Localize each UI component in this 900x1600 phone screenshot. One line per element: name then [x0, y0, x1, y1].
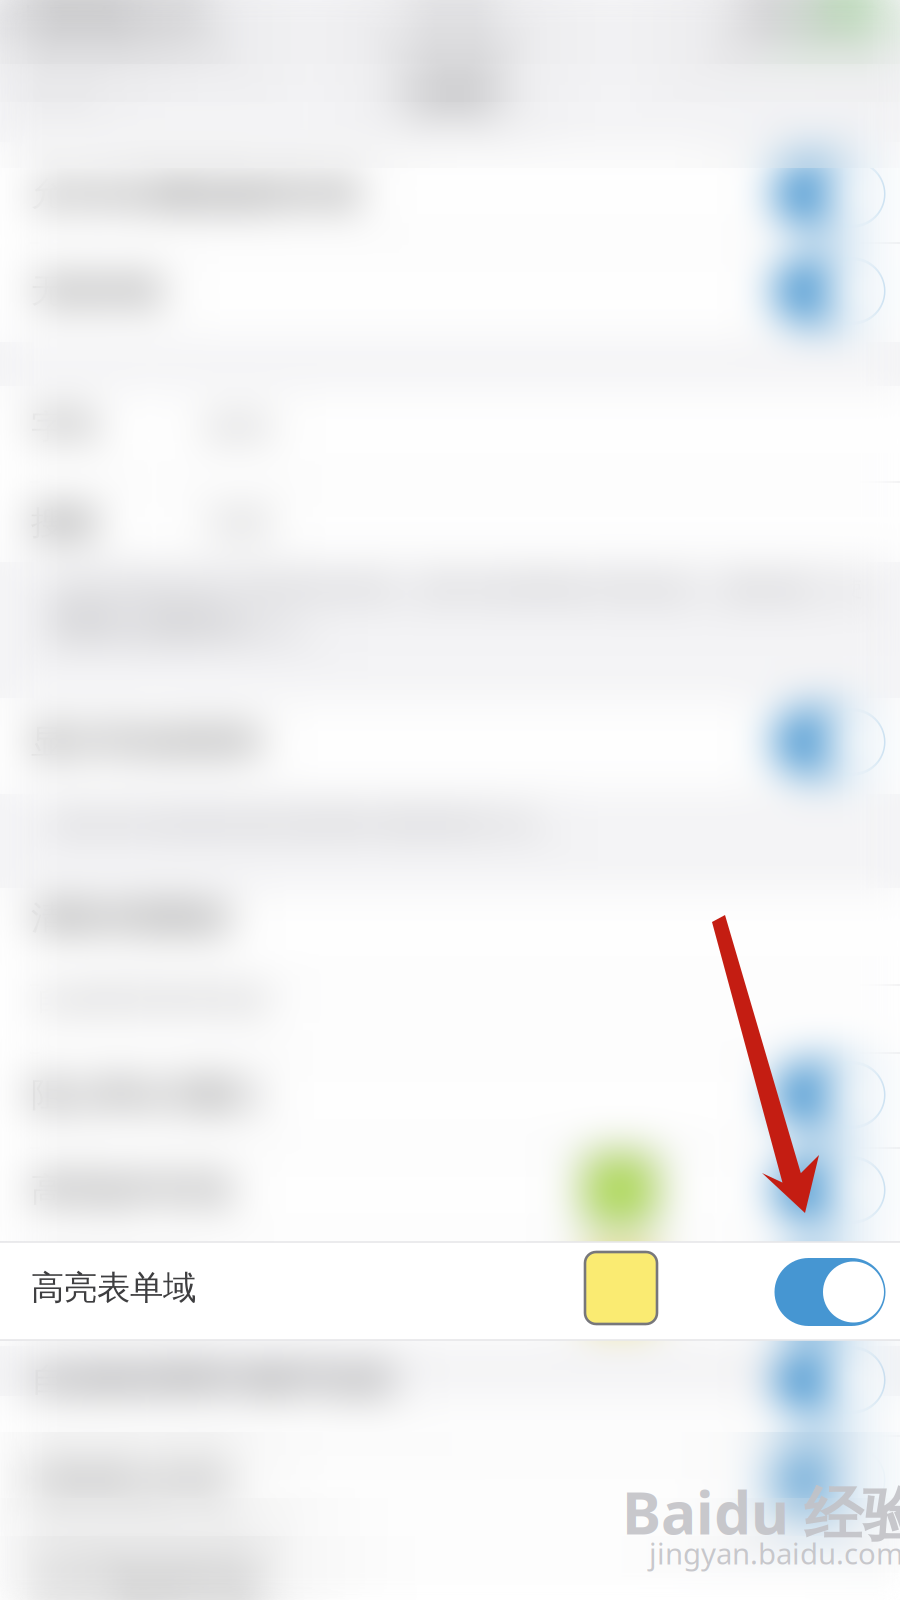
staticText: 100%	[732, 0, 817, 43]
staticText: 更多说明请参阅帮助中心。	[50, 618, 326, 646]
button[interactable]: Toggle on	[774, 1446, 885, 1514]
button[interactable]: Highlight colour	[584, 1154, 656, 1226]
staticText: 中国移动 4G	[12, 0, 224, 44]
button[interactable]: Toggle on	[774, 1061, 885, 1129]
button[interactable]: Highlight colour	[585, 1252, 657, 1324]
button[interactable]: Toggle on	[774, 1156, 885, 1224]
staticText: 阻止弹出式窗口	[31, 1074, 262, 1115]
staticText: 高亮表单域	[31, 1267, 196, 1308]
staticText: 自动保存密码与账号信息	[31, 1359, 394, 1400]
button[interactable]: Toggle on	[774, 257, 885, 325]
staticText: 清除浏览数据	[31, 897, 229, 938]
staticText: 显示开发者菜单	[31, 721, 262, 762]
staticText: 开启后浏览记录不会被保存到本机，但所访问的网站仍可能记录。 隐私政策 · 使用条…	[50, 572, 863, 632]
staticText: 关于与版本信息	[31, 1554, 262, 1595]
button[interactable]: 高亮表单域	[31, 1268, 531, 1308]
staticText: 字号	[31, 406, 97, 447]
button[interactable]: Toggle on	[774, 1258, 885, 1326]
staticText: jingyan.baidu.com	[649, 1533, 900, 1572]
button[interactable]: Toggle on	[774, 1258, 885, 1326]
staticText: 恢复默认设置	[31, 1459, 229, 1500]
staticText: 设置	[407, 62, 497, 118]
staticText: Baidu 经验	[622, 1473, 900, 1551]
button[interactable]: Toggle on	[774, 1346, 885, 1414]
button[interactable]: 高亮表单域	[31, 1268, 531, 1308]
button[interactable]: Toggle on	[774, 160, 885, 228]
staticText: 高亮选中区域	[31, 1169, 229, 1210]
staticText: 无痕浏览	[31, 270, 163, 311]
button[interactable]: Toggle on	[774, 708, 885, 776]
staticText: 高亮表单域	[31, 1267, 196, 1308]
staticText: 允许自动播放媒体内容	[31, 173, 361, 214]
button[interactable]: Highlight colour	[585, 1252, 657, 1324]
staticText: 搜索	[31, 502, 97, 543]
